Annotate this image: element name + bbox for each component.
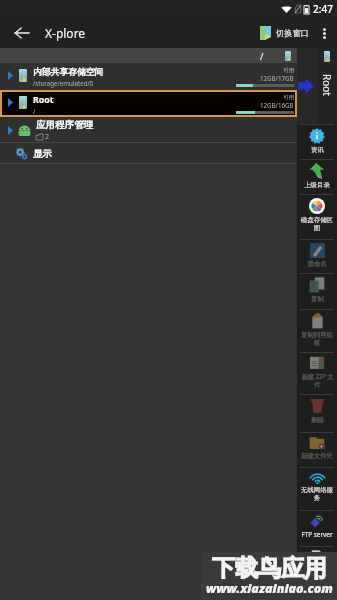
button[interactable]: 无线网络服 务 — [297, 468, 337, 510]
staticText: Root — [320, 65, 334, 105]
staticText: 2:47 — [313, 2, 333, 16]
button[interactable]: 新建 ZIP 文 件 — [297, 353, 337, 394]
staticText: www.xiazainiao.com — [206, 580, 333, 597]
staticText: 应用程序管理 — [36, 119, 93, 131]
button[interactable]: / — [0, 48, 297, 63]
button[interactable]: Back — [8, 19, 36, 47]
button[interactable]: 新建文件夹 — [297, 433, 337, 467]
staticText: /storage/emulated/0 — [33, 79, 94, 87]
staticText: FTP server — [301, 530, 333, 539]
staticText: 内部共享存储空间 — [33, 67, 104, 78]
staticText: 重命名 — [307, 260, 327, 268]
staticText: 磁盘存储区 图 — [301, 216, 333, 232]
button[interactable]: Copy to other pane — [298, 78, 314, 94]
button[interactable] — [297, 547, 337, 587]
staticText: 新建文件夹 — [301, 452, 333, 460]
staticText: 12GB/17GB — [260, 74, 294, 82]
button[interactable]: 内部共享存储空间 — [0, 63, 297, 90]
staticText: 新建 ZIP 文 件 — [301, 372, 334, 389]
staticText: 复制 — [311, 295, 324, 303]
staticText: 资讯 — [311, 146, 324, 154]
button[interactable]: 应用程序管理 — [0, 117, 297, 143]
staticText: 12GB/16GB — [260, 101, 294, 109]
staticText: 可用 — [283, 67, 294, 74]
button[interactable]: 显示 — [0, 143, 297, 164]
button[interactable]: Root — [317, 48, 337, 124]
staticText: 无线网络服 务 — [301, 486, 333, 502]
button[interactable]: 上级目录 — [297, 160, 337, 194]
staticText: 删除 — [311, 416, 324, 424]
button[interactable]: 复制 — [297, 274, 337, 309]
button[interactable]: 复制到剪贴 板 — [297, 310, 337, 352]
staticText: 显示 — [33, 148, 52, 160]
button[interactable]: Root — [0, 90, 297, 117]
staticText: 切换窗口 — [276, 28, 309, 38]
staticText: / — [260, 50, 264, 62]
button[interactable]: 资讯 — [297, 125, 337, 159]
staticText: 2 — [45, 132, 50, 142]
staticText: 复制到剪贴 板 — [301, 331, 333, 347]
staticText: 上级目录 — [304, 181, 330, 189]
staticText: 下载鸟应用 — [212, 554, 327, 583]
button[interactable]: 切换窗口 — [258, 23, 311, 43]
button[interactable]: 磁盘存储区 图 — [297, 195, 337, 239]
button[interactable]: 删除 — [297, 395, 337, 432]
button[interactable]: 重命名 — [297, 240, 337, 273]
button[interactable]: FTP server — [297, 511, 337, 546]
staticText: 可用 — [283, 94, 294, 101]
staticText: Root — [33, 94, 54, 106]
staticText: X-plore — [45, 25, 86, 41]
staticText: / — [33, 107, 36, 115]
button[interactable]: More options — [311, 20, 337, 46]
